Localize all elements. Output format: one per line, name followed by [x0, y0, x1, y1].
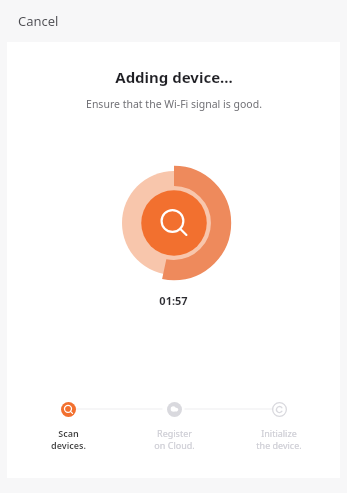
staticText: 01:57	[159, 293, 188, 308]
staticText: Ensure that the Wi-Fi signal is good.	[86, 97, 262, 111]
staticText: Scan	[58, 427, 79, 439]
staticText: Adding device...	[115, 67, 233, 87]
staticText: devices.	[51, 439, 86, 451]
staticText: Register	[157, 427, 192, 439]
staticText: on Cloud.	[154, 439, 195, 451]
staticText: Initialize	[261, 427, 297, 439]
staticText: Cancel	[18, 12, 59, 30]
button[interactable]: Initialize	[234, 400, 324, 451]
staticText: the device.	[256, 439, 302, 451]
button[interactable]: Scan	[23, 400, 113, 451]
other: Scanning for devices	[122, 231, 226, 335]
button[interactable]: Register	[129, 400, 219, 451]
button[interactable]: Cancel	[12, 8, 65, 34]
